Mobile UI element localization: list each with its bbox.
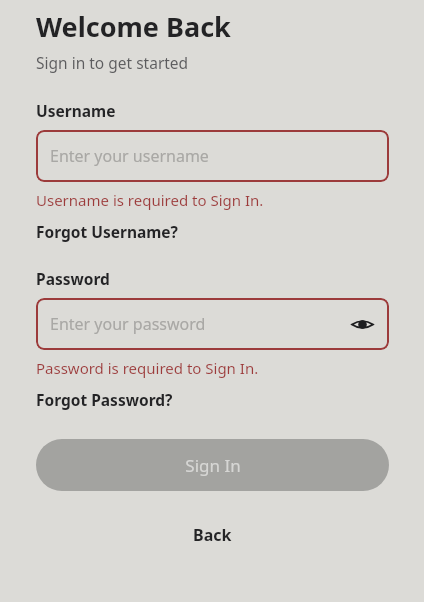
staticText: Sign In xyxy=(185,454,241,477)
button[interactable]: Enter your password xyxy=(36,298,389,350)
staticText: Forgot Username? xyxy=(36,221,179,242)
button[interactable]: Back xyxy=(183,520,242,550)
staticText: Sign in to get started xyxy=(36,52,189,73)
staticText: Password is required to Sign In. xyxy=(36,358,259,378)
staticText: Welcome Back xyxy=(36,8,231,45)
button[interactable]: Forgot Password? xyxy=(36,389,173,410)
staticText: Username is required to Sign In. xyxy=(36,190,264,210)
staticText: Enter your username xyxy=(50,145,377,167)
button[interactable]: Forgot Username? xyxy=(36,221,179,242)
button[interactable]: Show password xyxy=(347,309,377,339)
staticText: Forgot Password? xyxy=(36,389,173,410)
button[interactable]: Sign In xyxy=(36,439,389,491)
staticText: Username xyxy=(36,100,116,121)
staticText: Password xyxy=(36,268,110,289)
staticText: Enter your password xyxy=(50,313,347,335)
button[interactable]: Enter your username xyxy=(36,130,389,182)
staticText: Back xyxy=(193,524,232,546)
